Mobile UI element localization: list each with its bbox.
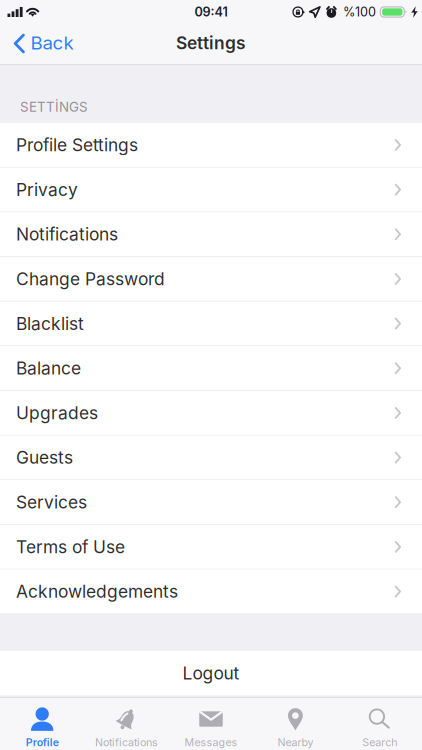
staticText: SETTİNGS [20,99,88,115]
staticText: Terms of Use [16,536,125,557]
button[interactable]: Logout [0,651,422,695]
staticText: Privacy [16,179,78,200]
button[interactable]: Terms of Use [0,525,422,569]
staticText: Notifications [95,736,158,749]
staticText: Notifications [16,224,118,245]
button[interactable]: Notifications [84,697,169,750]
button[interactable]: Profile [0,697,84,750]
staticText: Services [16,492,87,513]
staticText: Profile Settings [16,134,138,155]
staticText: Profile [26,736,59,749]
button[interactable]: Change Password [0,257,422,301]
button[interactable]: Back [0,30,73,59]
staticText: Balance [16,358,81,379]
button[interactable]: Acknowledgements [0,569,422,613]
staticText: Search [362,736,397,749]
staticText: Acknowledgements [16,581,178,602]
staticText: Upgrades [16,402,98,423]
staticText: Blacklist [16,313,84,334]
button[interactable]: Balance [0,346,422,390]
button[interactable]: Services [0,480,422,524]
button[interactable]: Upgrades [0,391,422,435]
staticText: Messages [184,736,237,749]
staticText: Change Password [16,268,165,289]
button[interactable]: Privacy [0,168,422,212]
button[interactable]: Search [338,697,422,750]
button[interactable]: Nearby [253,697,338,750]
button[interactable]: Guests [0,436,422,480]
staticText: Settings [176,32,246,53]
button[interactable]: Notifications [0,212,422,256]
button[interactable]: Profile Settings [0,123,422,167]
staticText: Guests [16,447,73,468]
staticText: Logout [182,663,239,684]
staticText: 09:41 [194,4,227,20]
staticText: Back [30,31,73,54]
button[interactable]: Blacklist [0,302,422,346]
staticText: Nearby [277,736,313,749]
button[interactable]: Messages [169,697,253,750]
staticText: %100 [343,4,376,20]
